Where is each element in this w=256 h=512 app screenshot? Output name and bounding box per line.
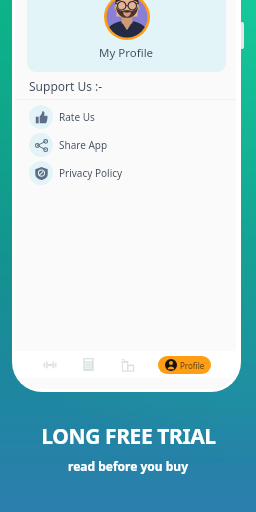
staticText: Support Us :- [29, 78, 103, 94]
button[interactable]: Profile [158, 356, 211, 374]
staticText: Share App [59, 138, 108, 152]
staticText: My Profile [99, 45, 154, 61]
button[interactable]: Rate Us [15, 103, 236, 131]
button[interactable]: My Profile [27, 0, 226, 72]
button[interactable]: Supplements [114, 351, 141, 378]
staticText: LONG FREE TRIAL [41, 422, 216, 451]
button[interactable]: Privacy Policy [15, 159, 236, 187]
staticText: Profile [180, 360, 205, 371]
staticText: Privacy Policy [59, 166, 123, 180]
staticText: Rate Us [59, 110, 95, 124]
staticText: read before you buy [68, 458, 188, 474]
button[interactable]: Share App [15, 131, 236, 159]
button[interactable]: Workout [36, 351, 63, 378]
button[interactable]: Calculator [75, 351, 102, 378]
